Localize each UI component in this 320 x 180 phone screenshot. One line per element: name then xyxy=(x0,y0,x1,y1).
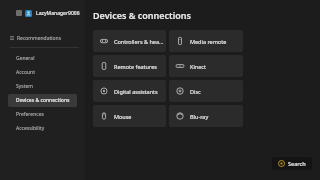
button[interactable]: Remote features xyxy=(93,55,166,77)
button[interactable]: Recommendations xyxy=(0,32,85,44)
staticText: System xyxy=(16,83,33,90)
button[interactable]: Accessibility xyxy=(8,122,77,135)
button[interactable]: Search xyxy=(272,157,312,170)
staticText: General xyxy=(16,55,35,62)
button[interactable]: System xyxy=(8,80,77,93)
button[interactable]: Mouse xyxy=(93,105,166,127)
staticText: Media remote xyxy=(190,38,227,45)
staticText: Blu-ray xyxy=(190,113,209,120)
button[interactable]: Media remote xyxy=(169,30,243,52)
button[interactable]: Blu-ray xyxy=(169,105,243,127)
button[interactable]: Disc xyxy=(169,80,243,102)
button[interactable]: Controllers & headsets xyxy=(93,30,166,52)
button[interactable]: General xyxy=(8,52,77,65)
button[interactable]: Preferences xyxy=(8,108,77,121)
button[interactable]: Digital assistants xyxy=(93,80,166,102)
staticText: Remote features xyxy=(114,63,157,70)
button[interactable]: Kinect xyxy=(169,55,243,77)
staticText: Kinect xyxy=(190,63,206,70)
staticText: Accessibility xyxy=(16,125,45,132)
staticText: Disc xyxy=(190,88,201,95)
staticText: Preferences xyxy=(16,111,44,118)
staticText: LazyManager9006 xyxy=(36,10,80,17)
staticText: Account xyxy=(16,69,36,76)
staticText: Devices & connections xyxy=(93,9,192,21)
staticText: Controllers & headsets xyxy=(114,38,166,45)
staticText: Recommendations xyxy=(17,35,62,42)
button[interactable]: Devices & connections xyxy=(8,94,77,107)
staticText: Mouse xyxy=(114,113,132,120)
button[interactable]: Account xyxy=(8,66,77,79)
staticText: Digital assistants xyxy=(114,88,158,95)
staticText: Search xyxy=(288,160,306,167)
button[interactable]: LazyManager9006 xyxy=(0,6,85,20)
staticText: Devices & connections xyxy=(16,97,70,104)
